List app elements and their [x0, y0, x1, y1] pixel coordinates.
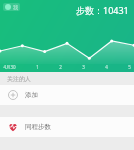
staticText: 5 — [128, 64, 131, 70]
staticText: 我 — [13, 4, 18, 10]
staticText: 添加 — [25, 91, 38, 99]
button[interactable]: Steps together — [0, 117, 134, 137]
staticText: 4 — [105, 64, 108, 70]
other: Add person — [8, 90, 18, 100]
staticText: 关注的人 — [7, 75, 31, 83]
staticText: 同程步数 — [25, 123, 51, 131]
staticText: 2 — [59, 64, 62, 70]
staticText: 步数：10431 — [76, 4, 129, 16]
staticText: 4月30 — [3, 64, 16, 70]
button[interactable]: My profile — [3, 3, 20, 11]
staticText: 3 — [82, 64, 85, 70]
other: Steps together — [8, 122, 18, 132]
button[interactable]: Add person — [0, 85, 134, 105]
staticText: 1 — [36, 64, 39, 70]
